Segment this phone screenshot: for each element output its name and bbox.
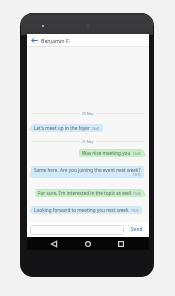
button[interactable]: Looking forward to meeting you next week	[31, 206, 142, 214]
staticText: 14:45	[133, 152, 141, 156]
staticText: Send	[131, 226, 143, 233]
button[interactable]: Let's meet up in the foyer	[31, 124, 103, 132]
staticText: Same here. Are you joining the event nex…	[34, 167, 141, 173]
button[interactable]: Send	[130, 225, 144, 234]
staticText: 19:25	[133, 192, 141, 196]
staticText: 19:26	[131, 209, 139, 213]
button[interactable]: Was nice meeting you	[79, 149, 144, 157]
button[interactable]: Back	[47, 237, 60, 250]
button[interactable]: Home	[81, 237, 94, 250]
button[interactable]: For sure, I'm interested in the topic as…	[35, 189, 144, 197]
staticText: 21 May	[82, 139, 94, 143]
staticText: For sure, I'm interested in the topic as…	[38, 190, 131, 196]
button[interactable]: Back	[30, 36, 39, 45]
staticText: Benjamin F.	[41, 37, 70, 44]
button[interactable]: Recents	[114, 237, 127, 250]
staticText: 19:11	[133, 173, 141, 177]
staticText: Let's meet up in the foyer	[34, 125, 90, 131]
button[interactable]: Same here. Are you joining the event nex…	[31, 166, 144, 178]
staticText: Was nice meeting you	[82, 150, 131, 156]
staticText: 20 May	[82, 111, 94, 115]
staticText: 14:41	[92, 127, 100, 131]
button[interactable]	[30, 225, 124, 235]
staticText: Looking forward to meeting you next week	[34, 207, 129, 213]
